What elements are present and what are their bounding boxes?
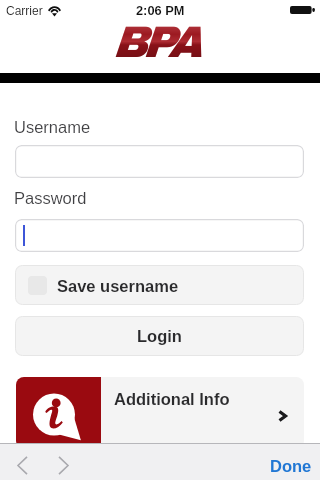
button[interactable] xyxy=(15,145,304,178)
staticText: Save username xyxy=(57,277,179,295)
button[interactable]: Login xyxy=(15,316,304,356)
staticText: Password xyxy=(14,189,87,207)
staticText: Login xyxy=(137,327,182,345)
staticText: Username xyxy=(14,118,91,136)
staticText: Additional Info xyxy=(114,390,230,408)
button[interactable] xyxy=(15,219,304,252)
staticText: Done xyxy=(270,457,312,475)
staticText: 2:06 PM xyxy=(136,3,185,17)
button[interactable]: Next field xyxy=(45,447,81,480)
button[interactable]: Additional Info xyxy=(16,377,304,449)
button[interactable]: Save username xyxy=(15,265,304,305)
staticText: Carrier xyxy=(6,4,43,17)
button[interactable]: Previous field xyxy=(4,447,40,480)
button[interactable]: Done xyxy=(270,457,312,475)
